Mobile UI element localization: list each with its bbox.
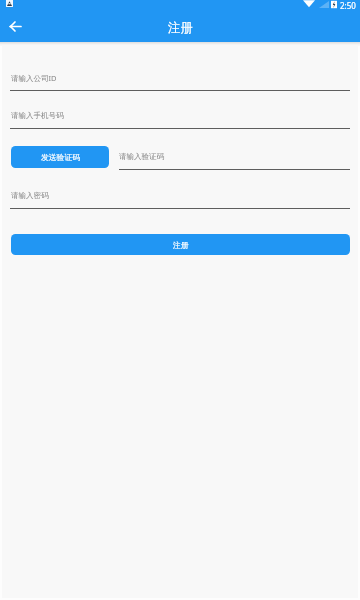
staticText: 请输入密码 [11,191,49,200]
button[interactable]: 注册 [11,234,350,255]
staticText: 2:50 [340,0,356,11]
staticText: 发送验证码 [41,152,80,162]
staticText: 请输入手机号码 [11,111,64,120]
button[interactable]: 发送验证码 [11,146,109,168]
staticText: 注册 [173,240,189,250]
button[interactable]: Back [7,18,24,35]
staticText: 请输入公司ID [11,73,57,83]
staticText: 请输入验证码 [119,152,164,161]
staticText: 注册 [168,20,193,36]
